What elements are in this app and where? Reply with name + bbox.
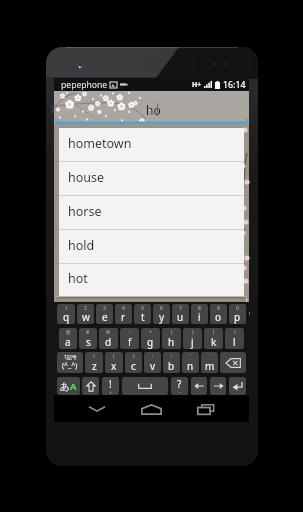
button[interactable]: 9: [210, 304, 227, 324]
button[interactable]: ): [183, 328, 202, 349]
button[interactable]: :: [144, 352, 161, 373]
staticText: :: [152, 353, 154, 360]
staticText: /: [93, 353, 95, 360]
staticText: z: [92, 359, 97, 373]
staticText: m: [205, 359, 215, 373]
button[interactable]: 0: [229, 304, 246, 324]
staticText: (: [171, 329, 173, 336]
button[interactable]: Recent apps: [190, 396, 220, 422]
staticText: -: [129, 329, 131, 336]
staticText: hold: [68, 237, 95, 254]
staticText: \: [234, 329, 236, 336]
button[interactable]: 2: [77, 304, 94, 324]
staticText: 16:14: [223, 79, 246, 91]
button[interactable]: house: [59, 162, 244, 196]
button[interactable]: [210, 377, 226, 395]
button[interactable]: @: [59, 328, 77, 349]
staticText: f: [128, 335, 132, 349]
staticText: ´: [209, 353, 211, 360]
button[interactable]: [82, 377, 99, 395]
button[interactable]: -: [120, 328, 139, 349]
staticText: (: [113, 353, 115, 360]
staticText: r: [121, 310, 126, 324]
button[interactable]: %: [99, 328, 118, 349]
staticText: ): [133, 353, 135, 360]
staticText: i: [198, 310, 201, 324]
button[interactable]: (: [162, 328, 181, 349]
button[interactable]: \: [225, 328, 244, 349]
button[interactable]: [122, 377, 168, 395]
button[interactable]: 3: [96, 304, 113, 324]
staticText: j: [191, 335, 194, 349]
button[interactable]: ´: [201, 352, 218, 373]
staticText: あ: [60, 381, 70, 393]
staticText: 2: [84, 305, 87, 312]
staticText: t: [141, 310, 145, 324]
staticText: b: [168, 359, 175, 373]
staticText: ?: [177, 377, 182, 391]
button[interactable]: horse: [59, 196, 244, 230]
button[interactable]: ˜: [182, 352, 199, 373]
button[interactable]: Home: [136, 396, 166, 422]
staticText: 8: [198, 305, 201, 312]
staticText: x: [111, 359, 117, 373]
button[interactable]: 6: [153, 304, 170, 324]
staticText: |: [212, 329, 215, 336]
button[interactable]: hot: [59, 264, 244, 296]
staticText: 0: [236, 305, 239, 312]
staticText: k: [211, 335, 217, 349]
staticText: .: [179, 387, 181, 395]
button[interactable]: ;: [163, 352, 180, 373]
staticText: w: [82, 310, 90, 324]
staticText: 7: [179, 305, 182, 312]
staticText: o: [215, 310, 222, 324]
staticText: horse: [68, 203, 102, 220]
button[interactable]: 1: [57, 304, 75, 324]
staticText: H+: [192, 80, 202, 90]
staticText: 4: [122, 305, 125, 312]
button[interactable]: hometown: [59, 128, 244, 162]
staticText: pepephone: [61, 79, 108, 91]
button[interactable]: (: [105, 352, 123, 373]
staticText: 1: [65, 305, 68, 312]
button[interactable]: 5: [134, 304, 151, 324]
button[interactable]: 7: [172, 304, 189, 324]
staticText: l: [233, 335, 236, 349]
button[interactable]: hold: [59, 230, 244, 264]
staticText: ): [192, 329, 194, 336]
staticText: e: [102, 310, 108, 324]
staticText: 5: [141, 305, 144, 312]
staticText: !: [109, 377, 112, 391]
staticText: n: [187, 359, 194, 373]
staticText: q: [63, 310, 70, 324]
staticText: u: [177, 310, 184, 324]
staticText: c: [131, 359, 136, 373]
button[interactable]: [220, 352, 246, 373]
button[interactable]: 1記号: [57, 352, 83, 373]
button[interactable]: .: [171, 377, 188, 395]
staticText: 9: [217, 305, 220, 312]
button[interactable]: ,: [102, 377, 119, 395]
button[interactable]: あ: [57, 377, 80, 395]
button[interactable]: 4: [115, 304, 132, 324]
staticText: 1記号: [64, 354, 77, 361]
staticText: house: [68, 169, 105, 186]
button[interactable]: [191, 377, 207, 395]
button[interactable]: Back: [82, 396, 112, 422]
staticText: ,: [110, 387, 112, 395]
staticText: s: [86, 335, 91, 349]
staticText: ho: [146, 102, 161, 118]
staticText: d: [105, 335, 112, 349]
staticText: h: [168, 335, 175, 349]
staticText: ˜: [189, 353, 192, 360]
staticText: +: [149, 329, 152, 336]
button[interactable]: |: [204, 328, 223, 349]
button[interactable]: ): [125, 352, 142, 373]
staticText: A: [70, 380, 77, 393]
button[interactable]: 8: [191, 304, 208, 324]
button[interactable]: [229, 377, 246, 395]
staticText: ;: [171, 353, 173, 360]
button[interactable]: #: [79, 328, 97, 349]
button[interactable]: /: [85, 352, 103, 373]
button[interactable]: +: [141, 328, 160, 349]
